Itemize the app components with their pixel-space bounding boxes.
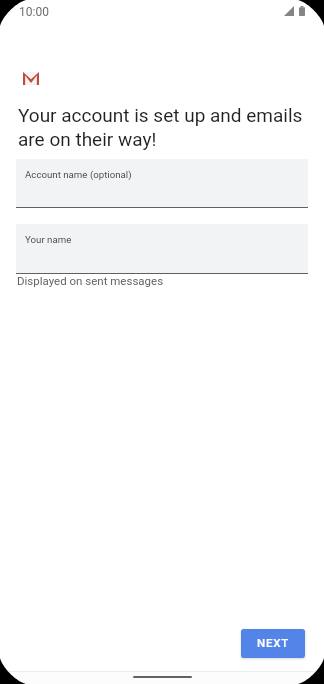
staticText: Your account is set up and emails are on… (18, 104, 310, 150)
button[interactable]: Your name (16, 224, 308, 274)
other: Home gesture bar (133, 676, 192, 678)
other: Mobile signal (284, 6, 294, 16)
button[interactable]: NEXT (241, 629, 305, 658)
staticText: Account name (optional) (25, 169, 132, 180)
staticText: NEXT (257, 636, 290, 649)
button[interactable]: Account name (optional) (16, 159, 308, 208)
staticText: 10:00 (19, 5, 49, 19)
staticText: Displayed on sent messages (17, 274, 164, 287)
other: Battery (299, 6, 305, 16)
staticText: Your name (25, 234, 72, 245)
